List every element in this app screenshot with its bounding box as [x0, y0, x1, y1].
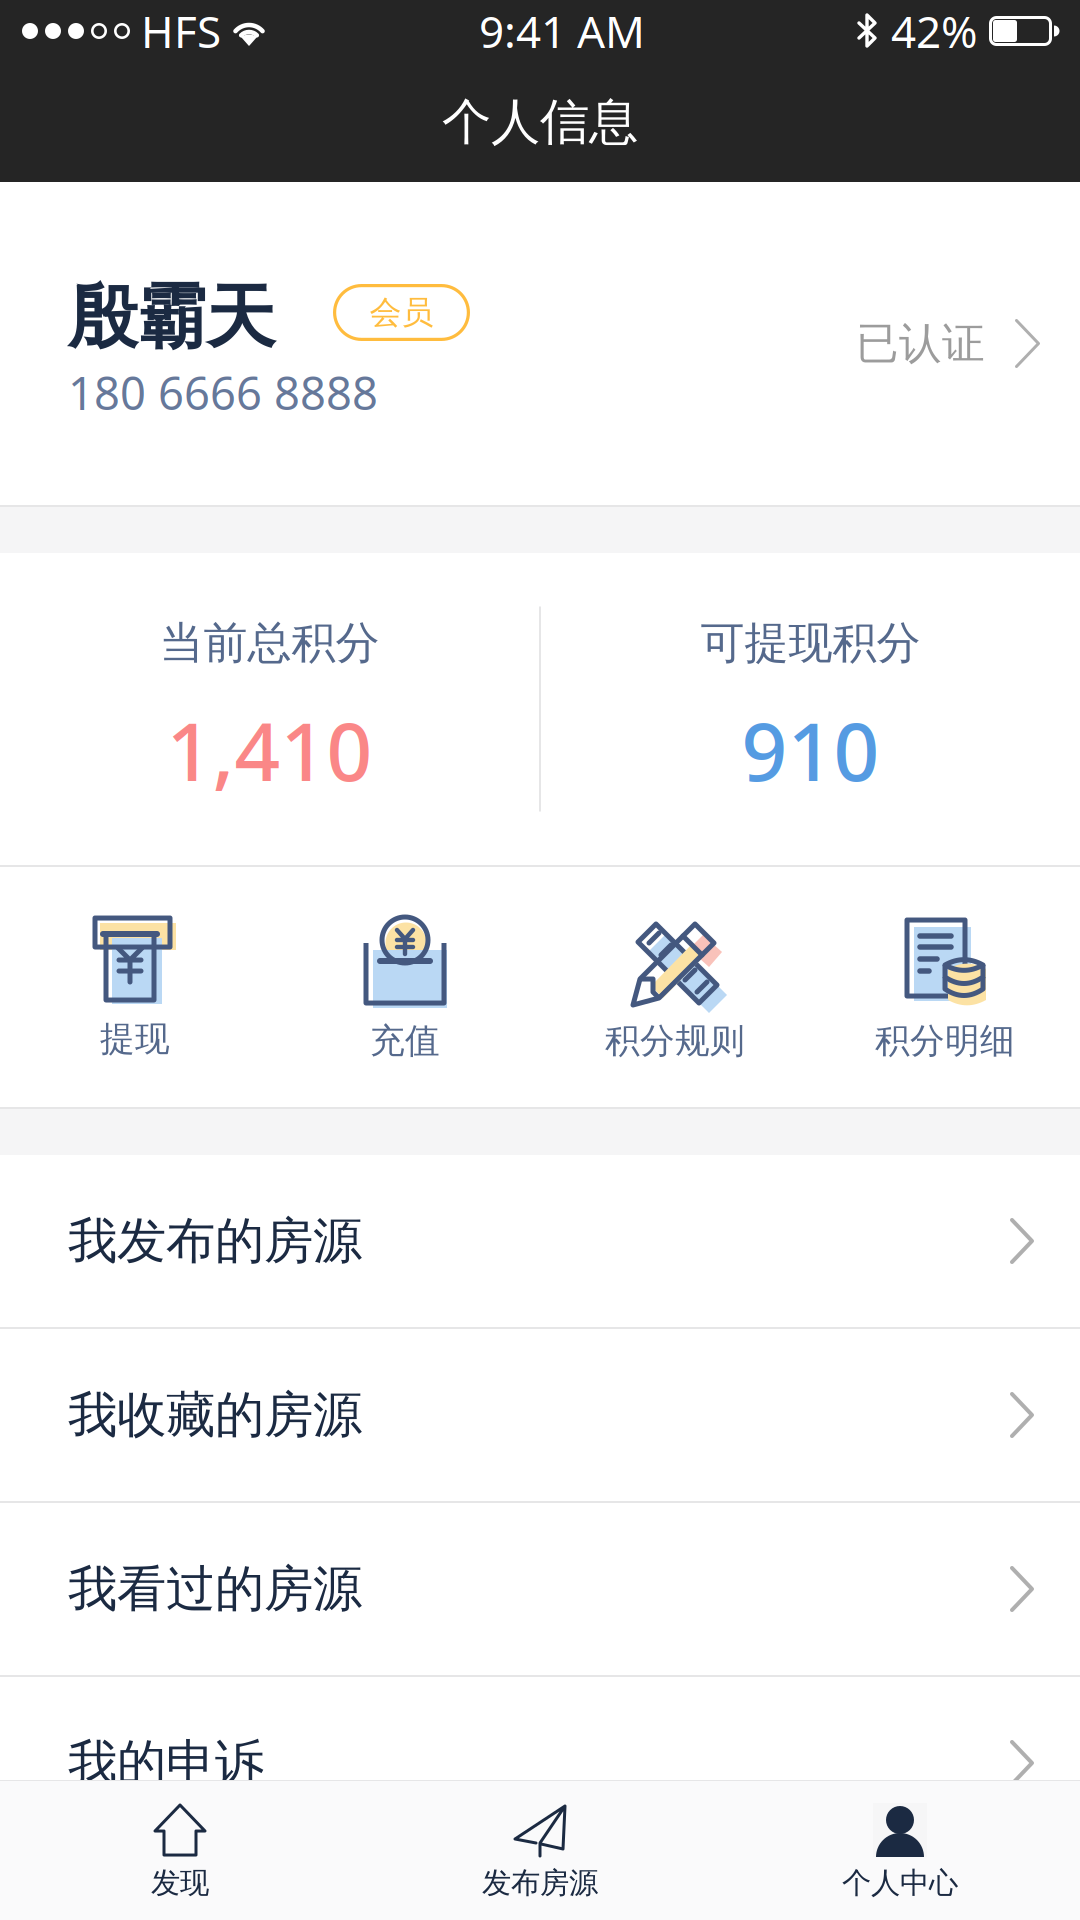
button[interactable]: 积分规则: [540, 867, 810, 1107]
staticText: 我的申诉: [68, 1733, 264, 1793]
staticText: 积分明细: [875, 1020, 1015, 1062]
staticText: 我看过的房源: [68, 1559, 362, 1619]
staticText: 我收藏的房源: [68, 1385, 362, 1445]
button[interactable]: 充值: [270, 867, 540, 1107]
staticText: 910: [741, 697, 879, 803]
staticText: 充值: [370, 1020, 440, 1062]
button[interactable]: 发布房源: [360, 1781, 720, 1920]
button[interactable]: 我的申诉: [0, 1677, 1080, 1849]
button[interactable]: 我发布的房源: [0, 1155, 1080, 1327]
staticText: 可提现积分: [700, 616, 920, 670]
staticText: 当前总积分: [159, 616, 379, 670]
staticText: 积分规则: [605, 1020, 745, 1062]
staticText: 9:41 AM: [479, 2, 645, 60]
staticText: 已认证: [856, 317, 985, 370]
button[interactable]: 发现: [0, 1781, 360, 1920]
button[interactable]: 我看过的房源: [0, 1503, 1080, 1675]
button[interactable]: 我收藏的房源: [0, 1329, 1080, 1501]
button[interactable]: 殷霸天: [0, 182, 1080, 505]
staticText: 发现: [151, 1865, 209, 1901]
staticText: 会员: [369, 293, 433, 332]
button[interactable]: 可提现积分: [541, 553, 1080, 865]
staticText: 个人中心: [842, 1865, 958, 1901]
staticText: 个人信息: [442, 92, 638, 152]
staticText: 我发布的房源: [68, 1211, 362, 1271]
staticText: 42%: [891, 2, 978, 60]
staticText: HFS: [141, 2, 221, 60]
staticText: 180 6666 8888: [68, 362, 378, 423]
staticText: 1,410: [166, 697, 372, 803]
button[interactable]: 积分明细: [810, 867, 1080, 1107]
button[interactable]: 个人中心: [720, 1781, 1080, 1920]
staticText: 殷霸天: [68, 275, 275, 360]
button[interactable]: 提现: [0, 867, 270, 1107]
staticText: 提现: [100, 1018, 170, 1060]
button[interactable]: 当前总积分: [0, 553, 539, 865]
staticText: 发布房源: [482, 1865, 598, 1901]
